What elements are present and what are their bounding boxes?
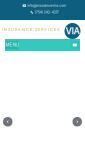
- staticText: (754) 242-4217: [35, 10, 59, 14]
- button[interactable]: Previous slide: [3, 117, 12, 126]
- staticText: I N S U R A N C E S E R V I C E S: [2, 27, 59, 32]
- button[interactable]: Next slide: [72, 117, 82, 126]
- staticText: MENU: [5, 42, 18, 48]
- staticText: VIA: [65, 26, 79, 36]
- button[interactable]: MENU: [5, 41, 18, 49]
- button[interactable]: Search: [70, 41, 79, 49]
- button[interactable]: info@insuranceviia.com: [23, 4, 66, 8]
- staticText: info@insuranceviia.com: [27, 4, 66, 8]
- button[interactable]: (754) 242-4217: [30, 10, 59, 14]
